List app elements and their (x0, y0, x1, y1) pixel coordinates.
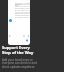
staticText: please remember to check (15, 14, 30, 16)
staticText: share updates anywhere. (2, 65, 36, 69)
staticText: everyone can check in and (2, 61, 37, 65)
staticText: to talk about the new plan (15, 9, 30, 11)
staticText: well for all of you out there (15, 5, 30, 7)
staticText: we will meet later tonight (15, 7, 30, 9)
staticText: and share a few updates (15, 11, 30, 13)
staticText: Today at 9:41 good morning (15, 2, 30, 6)
button[interactable]: Today at 9:41 good morning (8, 0, 30, 45)
staticText: everyone hope the day goes (15, 3, 30, 7)
staticText: Support Every (2, 45, 30, 50)
staticText: before the week is over so (15, 12, 30, 14)
staticText: the shared notes tomorrow (15, 16, 30, 18)
staticText: Add your loved ones so (2, 58, 33, 62)
staticText: Step of the Way (2, 50, 34, 55)
